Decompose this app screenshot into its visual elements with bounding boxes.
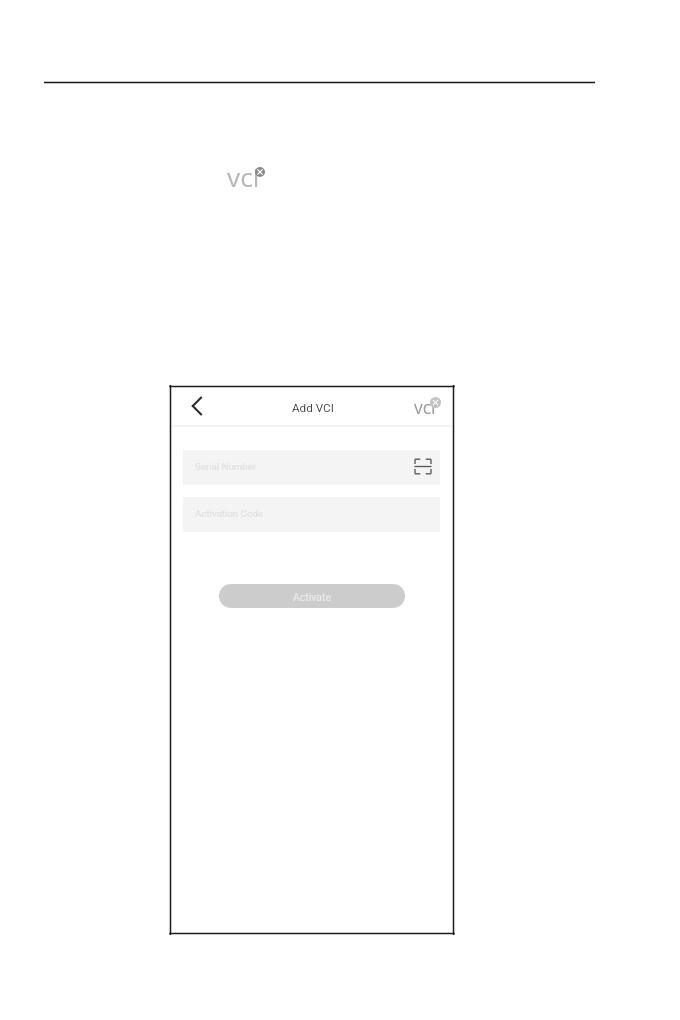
staticText: Activation Code [195,508,264,519]
staticText: vci [227,159,260,195]
button[interactable]: Serial Number [183,450,440,485]
staticText: Add VCI [292,401,334,415]
staticText: Serial Number [195,461,257,472]
button[interactable]: Scan barcode [414,457,432,476]
staticText: vci [414,395,436,419]
button[interactable]: Activate [219,584,405,608]
button[interactable]: Back [185,394,209,418]
staticText: Activate [293,591,332,603]
